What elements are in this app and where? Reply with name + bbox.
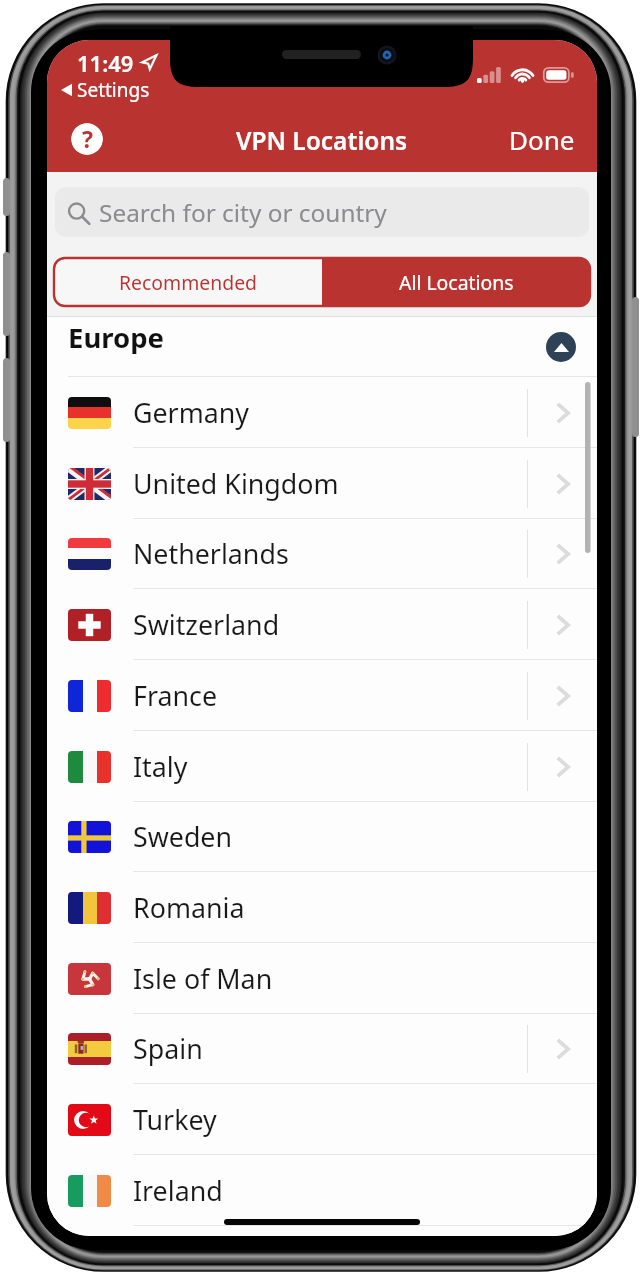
button[interactable]: France bbox=[47, 660, 597, 731]
button[interactable]: Sweden bbox=[47, 801, 597, 872]
button[interactable]: United Kingdom bbox=[47, 448, 597, 519]
staticText: All Locations bbox=[399, 269, 514, 295]
staticText: Switzerland bbox=[133, 606, 280, 643]
button[interactable]: Netherlands bbox=[47, 518, 597, 589]
staticText: ? bbox=[82, 123, 93, 154]
button[interactable]: Ireland bbox=[47, 1155, 597, 1226]
staticText: 11:49 bbox=[77, 48, 134, 78]
button[interactable]: Isle of Man bbox=[47, 943, 597, 1014]
staticText: Spain bbox=[133, 1030, 203, 1067]
staticText: Europe bbox=[68, 319, 165, 356]
button[interactable]: Help bbox=[71, 123, 103, 155]
staticText: Search for city or country bbox=[99, 196, 387, 229]
button[interactable]: Recommended bbox=[54, 258, 322, 306]
button[interactable]: All Locations bbox=[322, 258, 590, 306]
staticText: Ireland bbox=[133, 1172, 223, 1209]
button[interactable]: Spain bbox=[47, 1013, 597, 1084]
staticText: Isle of Man bbox=[133, 960, 273, 997]
button[interactable]: Romania bbox=[47, 872, 597, 943]
button[interactable]: Switzerland bbox=[47, 589, 597, 660]
staticText: United Kingdom bbox=[133, 465, 339, 502]
staticText: VPN Locations bbox=[236, 124, 408, 157]
staticText: Netherlands bbox=[133, 535, 289, 572]
staticText: Romania bbox=[133, 889, 245, 926]
staticText: Turkey bbox=[133, 1101, 217, 1138]
button[interactable]: Search for city or country bbox=[55, 187, 589, 237]
button[interactable]: Italy bbox=[47, 731, 597, 802]
button[interactable]: Germany bbox=[47, 377, 597, 448]
staticText: Recommended bbox=[119, 269, 258, 295]
staticText: Germany bbox=[133, 394, 250, 431]
staticText: Settings bbox=[77, 77, 150, 103]
button[interactable]: Collapse Europe section bbox=[546, 332, 576, 362]
staticText: Sweden bbox=[133, 818, 233, 855]
staticText: France bbox=[133, 677, 218, 714]
button[interactable]: Done bbox=[497, 114, 587, 165]
button[interactable]: Turkey bbox=[47, 1084, 597, 1155]
staticText: Done bbox=[509, 122, 575, 157]
staticText: Italy bbox=[133, 748, 188, 785]
